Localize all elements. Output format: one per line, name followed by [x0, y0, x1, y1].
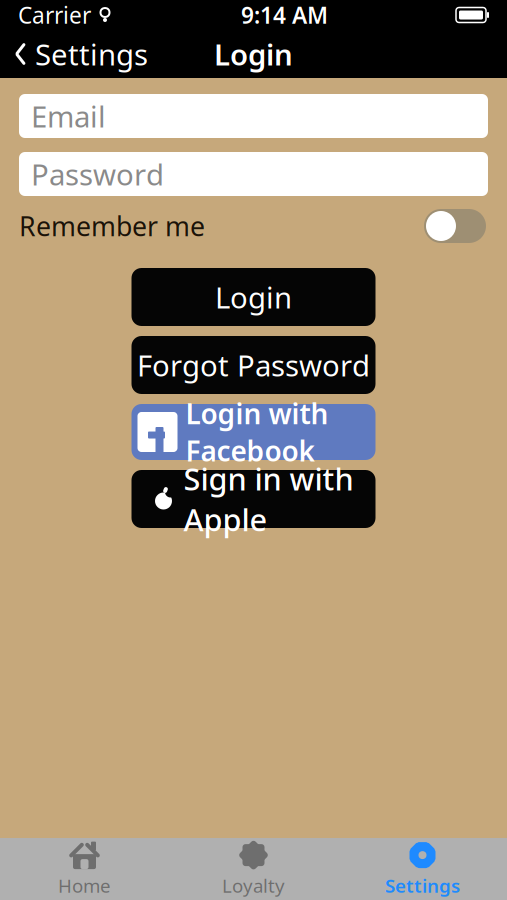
staticText: Password	[31, 154, 164, 193]
button[interactable]: Login with Facebook	[131, 404, 375, 460]
staticText: Carrier	[18, 0, 91, 30]
staticText: 9:14 AM	[241, 0, 328, 30]
staticText: Email	[31, 96, 106, 135]
staticText: Settings	[385, 873, 460, 898]
button[interactable]: Login	[131, 268, 375, 326]
button[interactable]: Forgot Password	[131, 336, 375, 394]
button[interactable]: Home	[0, 838, 169, 900]
staticText: Home	[58, 873, 111, 898]
button[interactable]: Loyalty	[169, 838, 338, 900]
button[interactable]: Settings	[338, 838, 507, 900]
button[interactable]: Sign in with Apple	[131, 470, 375, 528]
staticText: Settings	[35, 34, 148, 73]
staticText: Login	[215, 277, 292, 316]
staticText: Remember me	[19, 208, 205, 244]
staticText: Loyalty	[222, 873, 285, 898]
staticText: Login with Facebook	[185, 395, 328, 469]
button[interactable]: Settings	[0, 26, 162, 81]
staticText: Forgot Password	[137, 345, 370, 384]
button[interactable]: Remember me	[422, 206, 488, 246]
staticText: Sign in with Apple	[183, 458, 353, 540]
staticText: Login	[214, 34, 293, 73]
